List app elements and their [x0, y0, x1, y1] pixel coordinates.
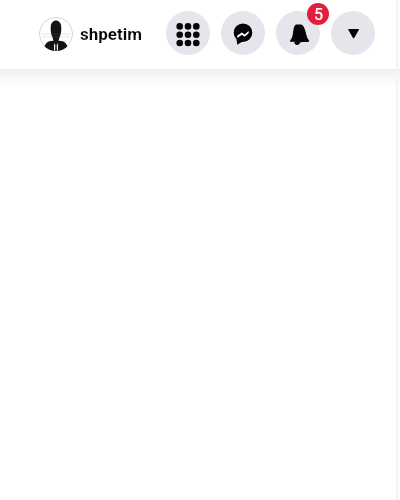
- button[interactable]: Messenger: [221, 11, 265, 55]
- button[interactable]: Notifications: [276, 11, 320, 55]
- staticText: shpetim: [80, 24, 142, 44]
- staticText: 5: [314, 5, 323, 24]
- button[interactable]: Profile photo: [39, 17, 73, 51]
- button[interactable]: Account menu: [331, 11, 375, 55]
- button[interactable]: Menu: [166, 11, 210, 55]
